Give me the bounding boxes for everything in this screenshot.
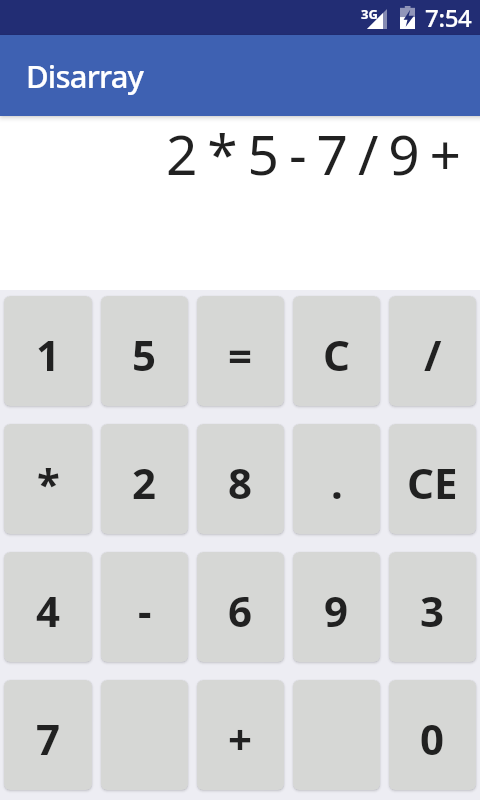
button[interactable]: C xyxy=(293,296,380,406)
staticText: C xyxy=(323,326,350,383)
button[interactable]: = xyxy=(197,296,284,406)
button[interactable]: + xyxy=(197,680,284,790)
button[interactable]: . xyxy=(293,424,380,534)
staticText: / xyxy=(424,326,442,383)
staticText: 4 xyxy=(36,582,61,639)
button[interactable]: 7 xyxy=(4,680,92,790)
staticText: 3G xyxy=(361,5,378,23)
staticText: 9 xyxy=(324,582,349,639)
button[interactable]: - xyxy=(101,552,188,662)
staticText: 2 xyxy=(132,454,157,511)
staticText: * xyxy=(37,454,60,511)
staticText: = xyxy=(228,326,253,383)
staticText: - xyxy=(138,582,152,639)
button[interactable]: 9 xyxy=(293,552,380,662)
button[interactable]: 4 xyxy=(4,552,92,662)
button[interactable]: 1 xyxy=(4,296,92,406)
button[interactable]: 0 xyxy=(389,680,476,790)
button[interactable]: CE xyxy=(389,424,476,534)
button[interactable]: * xyxy=(4,424,92,534)
staticText: 6 xyxy=(228,582,253,639)
staticText: 7:54 xyxy=(425,1,472,34)
staticText: 0 xyxy=(420,710,445,767)
staticText: 5 xyxy=(132,326,157,383)
staticText: 8 xyxy=(228,454,253,511)
staticText: 1 xyxy=(36,326,61,383)
button[interactable]: 5 xyxy=(101,296,188,406)
staticText: . xyxy=(331,454,343,511)
button[interactable]: 8 xyxy=(197,424,284,534)
button[interactable]: / xyxy=(389,296,476,406)
staticText: 7 xyxy=(36,710,61,767)
staticText: 3 xyxy=(420,582,445,639)
staticText: 2 * 5 - 7 / 9 + xyxy=(166,116,459,191)
staticText: + xyxy=(228,710,253,767)
button[interactable]: 3 xyxy=(389,552,476,662)
staticText: CE xyxy=(407,454,458,511)
button[interactable]: 6 xyxy=(197,552,284,662)
staticText: Disarray xyxy=(26,55,144,97)
button[interactable]: 2 xyxy=(101,424,188,534)
